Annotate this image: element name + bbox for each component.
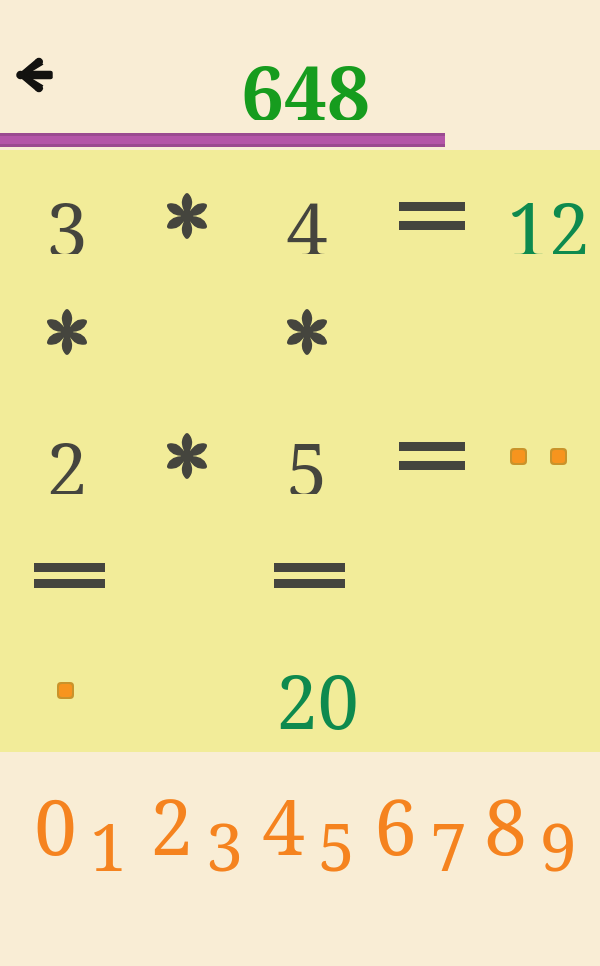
- staticText: 2: [150, 774, 193, 858]
- staticText: 8: [484, 774, 527, 858]
- button[interactable]: 3: [196, 800, 252, 884]
- button[interactable]: 9: [530, 800, 586, 884]
- staticText: 20: [276, 650, 359, 730]
- button[interactable]: [59, 684, 72, 697]
- staticText: 3: [46, 178, 88, 254]
- staticText: 6: [374, 774, 417, 858]
- button[interactable]: 2: [37, 418, 97, 494]
- staticText: 2: [46, 418, 88, 494]
- button[interactable]: 6: [364, 774, 426, 858]
- button[interactable]: [512, 450, 525, 463]
- staticText: 5: [286, 418, 328, 494]
- button[interactable]: 1: [80, 800, 136, 884]
- button[interactable]: Back: [8, 47, 68, 103]
- staticText: 12: [507, 178, 590, 254]
- staticText: 4: [286, 178, 328, 254]
- button[interactable]: 0: [24, 774, 86, 858]
- button[interactable]: 8: [474, 774, 536, 858]
- staticText: 9: [540, 800, 577, 884]
- staticText: 648: [241, 40, 370, 120]
- staticText: 3: [206, 800, 243, 884]
- staticText: 1: [90, 800, 127, 884]
- button[interactable]: 4: [277, 178, 337, 254]
- staticText: 5: [318, 800, 355, 884]
- staticText: 7: [430, 800, 467, 884]
- button[interactable]: 7: [420, 800, 476, 884]
- button[interactable]: 2: [140, 774, 202, 858]
- staticText: 4: [262, 774, 305, 858]
- staticText: 0: [34, 774, 77, 858]
- button[interactable]: 5: [308, 800, 364, 884]
- button[interactable]: 3: [37, 178, 97, 254]
- button[interactable]: 4: [252, 774, 314, 858]
- button[interactable]: 5: [277, 418, 337, 494]
- button[interactable]: [552, 450, 565, 463]
